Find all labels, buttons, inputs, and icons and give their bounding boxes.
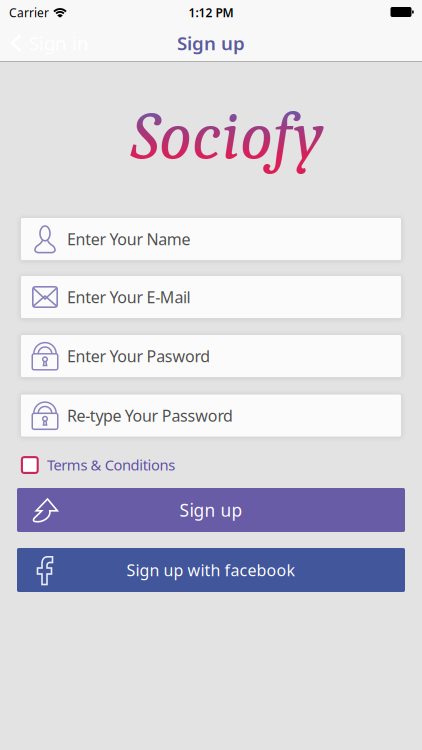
staticText: Enter Your Pasword bbox=[67, 345, 210, 367]
staticText: Enter Your E-Mail bbox=[67, 286, 191, 308]
staticText: Re-type Your Password bbox=[67, 405, 233, 426]
staticText: 1:12 PM bbox=[188, 4, 233, 20]
staticText: Sign up bbox=[177, 31, 245, 55]
staticText: Terms & Conditions bbox=[47, 455, 175, 474]
staticText: Enter Your Name bbox=[67, 228, 190, 250]
staticText: Carrier bbox=[9, 4, 49, 20]
staticText: Sign up bbox=[179, 498, 242, 521]
staticText: Sign up with facebook bbox=[126, 559, 295, 581]
